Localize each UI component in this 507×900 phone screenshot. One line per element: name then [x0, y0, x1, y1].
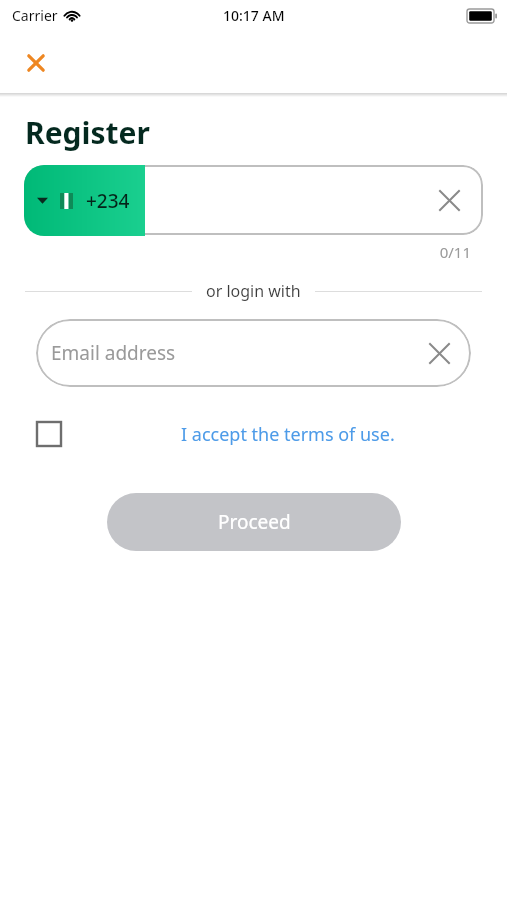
staticText: or login with	[206, 280, 301, 302]
button[interactable]: Clear phone number	[429, 180, 469, 220]
staticText: Proceed	[218, 509, 291, 535]
staticText: Register	[25, 112, 150, 153]
staticText: Carrier	[12, 6, 58, 25]
staticText: Email address	[51, 340, 176, 366]
button[interactable]: Close	[16, 43, 56, 83]
staticText: +234	[86, 188, 130, 214]
staticText: 0/11	[0, 242, 471, 262]
button[interactable]: I accept the terms of use.	[68, 422, 483, 447]
staticText: 10:17 AM	[223, 6, 285, 25]
button[interactable]: Proceed	[107, 493, 401, 551]
button[interactable]: Select country code	[24, 165, 145, 236]
button[interactable]: Clear email address	[420, 334, 458, 372]
staticText: I accept the terms of use.	[181, 422, 395, 447]
button[interactable]: Clear phone number	[24, 165, 483, 235]
button[interactable]: Accept the terms of use	[31, 416, 67, 452]
button[interactable]: Email address	[36, 319, 471, 387]
